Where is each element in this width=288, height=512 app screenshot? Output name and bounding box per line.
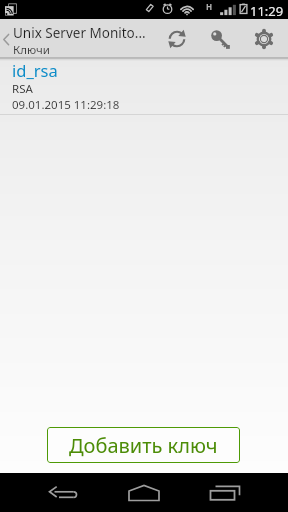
button[interactable]: Back: [23, 473, 103, 512]
staticText: Unix Server Monito...: [13, 24, 146, 42]
button[interactable]: id_rsa: [0, 58, 288, 114]
staticText: RSA: [12, 81, 33, 97]
staticText: H: [206, 1, 213, 12]
button[interactable]: Добавить ключ: [47, 427, 240, 463]
staticText: Добавить ключ: [69, 432, 218, 459]
button[interactable]: Keys: [198, 19, 242, 58]
button[interactable]: Settings: [242, 19, 286, 58]
staticText: 09.01.2015 11:29:18: [12, 97, 120, 113]
staticText: id_rsa: [12, 59, 58, 81]
staticText: Ключи: [13, 42, 50, 58]
button[interactable]: Recents: [185, 473, 265, 512]
button[interactable]: Unix Server Monito...: [0, 19, 155, 58]
button[interactable]: Home: [104, 473, 184, 512]
staticText: 11:29: [250, 2, 284, 20]
button[interactable]: Refresh: [155, 19, 199, 58]
